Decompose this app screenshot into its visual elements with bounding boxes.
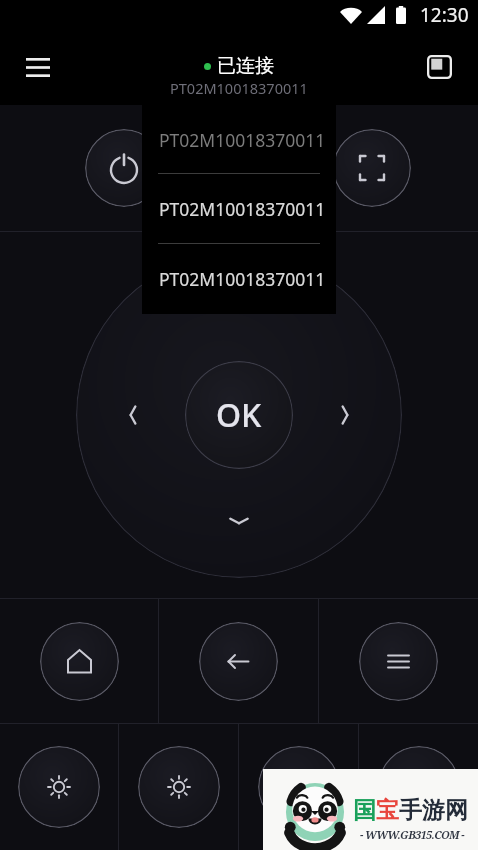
button[interactable]: Stop <box>417 45 461 89</box>
button[interactable]: Fullscreen <box>333 129 411 207</box>
button[interactable]: Back <box>199 622 278 701</box>
staticText: PT02M10018370011 <box>159 267 326 291</box>
staticText: 12:30 <box>420 2 469 28</box>
button[interactable]: Brightness <box>378 746 460 828</box>
button[interactable]: PT02M10018370011 <box>142 105 336 174</box>
staticText: PT02M10018370011 <box>159 128 326 152</box>
button[interactable]: Menu <box>359 622 438 701</box>
button[interactable]: Menu <box>14 43 62 91</box>
button[interactable]: Power <box>85 129 163 207</box>
staticText: PT02M10018370011 <box>170 78 308 98</box>
button[interactable]: Brightness <box>18 746 100 828</box>
staticText: - WWW.GB315.COM - <box>360 827 464 842</box>
button[interactable]: OK <box>185 361 293 469</box>
staticText: 宝 <box>376 796 399 825</box>
button[interactable]: Brightness <box>138 746 220 828</box>
staticText: 手游网 <box>399 796 468 825</box>
button[interactable]: PT02M10018370011 <box>142 174 336 244</box>
button[interactable]: Home <box>40 622 119 701</box>
staticText: OK <box>216 393 262 437</box>
button[interactable]: Direction pad <box>76 252 402 578</box>
staticText: 国 <box>353 796 376 825</box>
staticText: PT02M10018370011 <box>159 197 326 221</box>
button[interactable]: Brightness <box>258 746 340 828</box>
staticText: 已连接 <box>217 54 274 78</box>
button[interactable]: PT02M10018370011 <box>142 244 336 314</box>
